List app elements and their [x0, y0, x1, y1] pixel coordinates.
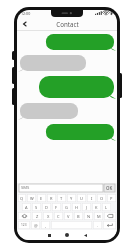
button[interactable]: J [82, 203, 91, 211]
button[interactable]: C [54, 212, 63, 220]
staticText: @ [34, 223, 38, 228]
button[interactable]: K [92, 203, 101, 211]
button[interactable]: . [93, 221, 102, 229]
staticText: N [87, 214, 91, 219]
button[interactable]: M [94, 212, 103, 220]
staticText: H [75, 205, 78, 210]
staticText: J [86, 205, 88, 210]
staticText: Y [70, 196, 73, 201]
button[interactable] [51, 221, 92, 229]
button[interactable]: P [107, 194, 116, 202]
staticText: OK [106, 185, 113, 191]
button[interactable]: Home [62, 230, 72, 240]
staticText: C [57, 214, 60, 219]
button[interactable]: Q [18, 194, 26, 202]
button[interactable]: V [64, 212, 73, 220]
button[interactable]: O [97, 194, 106, 202]
button[interactable]: D [42, 203, 51, 211]
staticText: U [80, 196, 83, 201]
staticText: R [50, 196, 53, 201]
staticText: M [97, 214, 101, 219]
button[interactable]: U [77, 194, 86, 202]
button[interactable]: Back [80, 230, 90, 240]
staticText: O [100, 196, 104, 201]
staticText: I [91, 196, 93, 201]
staticText: L [105, 205, 108, 210]
button[interactable]: , [41, 221, 50, 229]
button[interactable]: I [87, 194, 96, 202]
button[interactable]: X [43, 212, 53, 220]
staticText: SMS [21, 185, 30, 191]
button[interactable] [46, 124, 114, 140]
button[interactable]: Z [32, 212, 42, 220]
staticText: P [110, 196, 113, 201]
staticText: 12:00 [21, 11, 31, 16]
staticText: F [55, 205, 58, 210]
button[interactable]: F [52, 203, 61, 211]
staticText: B [77, 214, 80, 219]
button[interactable] [20, 55, 86, 71]
button[interactable]: W [27, 194, 36, 202]
button[interactable]: Recents [44, 230, 54, 240]
button[interactable]: L [102, 203, 111, 211]
staticText: E [40, 196, 43, 201]
staticText: V [67, 214, 70, 219]
button[interactable]: H [72, 203, 81, 211]
button[interactable]: @ [31, 221, 40, 229]
button[interactable] [39, 76, 114, 98]
button[interactable]: OK [104, 184, 115, 192]
staticText: , [45, 223, 47, 228]
button[interactable]: Backspace [104, 212, 116, 220]
staticText: Z [36, 214, 39, 219]
button[interactable]: G [62, 203, 71, 211]
button[interactable] [46, 34, 114, 50]
staticText: W [30, 196, 34, 201]
button[interactable]: S [32, 203, 41, 211]
button[interactable]: E [37, 194, 46, 202]
button[interactable]: SMS [19, 184, 103, 192]
button[interactable]: Y [67, 194, 76, 202]
staticText: D [45, 205, 48, 210]
button[interactable]: B [74, 212, 83, 220]
staticText: T [60, 196, 63, 201]
button[interactable]: Back [19, 18, 30, 29]
button[interactable]: R [47, 194, 56, 202]
staticText: A [25, 205, 28, 210]
button[interactable]: Shift [18, 212, 31, 220]
staticText: S [35, 205, 38, 210]
staticText: 123 [21, 223, 27, 227]
button[interactable] [20, 103, 78, 119]
staticText: K [95, 205, 98, 210]
button[interactable]: N [84, 212, 93, 220]
button[interactable]: A [22, 203, 31, 211]
staticText: Q [20, 196, 24, 201]
staticText: G [65, 205, 68, 210]
staticText: Contact [56, 20, 79, 28]
button[interactable]: 123 [18, 221, 30, 229]
button[interactable]: T [57, 194, 66, 202]
staticText: X [47, 214, 50, 219]
button[interactable]: Enter [103, 221, 116, 229]
staticText: . [97, 223, 99, 228]
